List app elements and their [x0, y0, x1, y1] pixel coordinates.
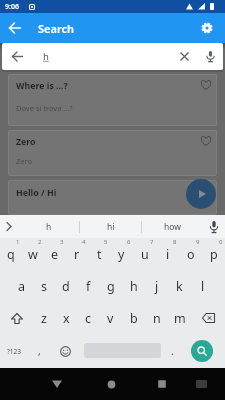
button[interactable]: i [156, 238, 179, 270]
staticText: , [38, 344, 41, 358]
button[interactable]: . [163, 334, 181, 368]
staticText: h [43, 50, 49, 63]
staticText: r [74, 246, 80, 263]
button[interactable]: s [33, 270, 55, 302]
button[interactable] [2, 43, 32, 70]
button[interactable]: a [11, 270, 33, 302]
button[interactable]: y [110, 238, 133, 270]
button[interactable] [190, 368, 212, 400]
button[interactable]: c [77, 302, 99, 334]
button[interactable]: Where is ...? [8, 74, 217, 126]
button[interactable] [186, 179, 216, 209]
staticText: 0 [219, 238, 223, 246]
button[interactable] [197, 43, 223, 70]
staticText: o [187, 246, 195, 263]
staticText: 2 [38, 238, 42, 246]
button[interactable]: n [145, 302, 168, 334]
button[interactable] [0, 302, 33, 334]
staticText: l [201, 278, 205, 295]
button[interactable]: f [77, 270, 99, 302]
staticText: e [51, 246, 59, 263]
staticText: 3 [60, 238, 64, 246]
staticText: h [46, 221, 52, 233]
staticText: z [41, 310, 47, 327]
button[interactable]: m [168, 302, 191, 334]
staticText: a [18, 278, 26, 295]
button[interactable] [53, 334, 77, 368]
staticText: h [130, 278, 138, 295]
staticText: 1 [16, 238, 20, 246]
staticText: Search [38, 21, 75, 36]
staticText: k [176, 278, 183, 295]
button[interactable]: h [18, 215, 79, 238]
staticText: c [85, 310, 92, 327]
button[interactable]: j [145, 270, 168, 302]
button[interactable] [149, 368, 175, 400]
button[interactable]: Hello / Hi [8, 180, 217, 215]
staticText: x [63, 310, 70, 327]
button[interactable] [98, 368, 124, 400]
button[interactable]: x [55, 302, 77, 334]
staticText: d [62, 278, 70, 295]
staticText: 6 [127, 238, 131, 246]
button[interactable] [191, 340, 213, 362]
staticText: Where is ...? [16, 80, 68, 92]
staticText: Zero [16, 136, 36, 148]
staticText: 7 [150, 238, 154, 246]
staticText: f [86, 278, 91, 295]
staticText: ?123 [7, 347, 21, 356]
staticText: y [118, 246, 125, 263]
button[interactable]: k [168, 270, 191, 302]
staticText: 9:06 [5, 2, 19, 12]
button[interactable]: how [142, 215, 203, 238]
button[interactable]: u [133, 238, 156, 270]
button[interactable]: h [122, 270, 145, 302]
staticText: hi [107, 221, 115, 233]
button[interactable]: hi [80, 215, 141, 238]
staticText: 9 [196, 238, 200, 246]
staticText: u [141, 246, 149, 263]
button[interactable] [191, 302, 225, 334]
staticText: s [41, 278, 47, 295]
button[interactable]: l [191, 270, 214, 302]
staticText: 8 [173, 238, 177, 246]
button[interactable]: Zero [8, 130, 217, 176]
staticText: b [130, 310, 138, 327]
button[interactable]: o [179, 238, 202, 270]
staticText: q [7, 246, 15, 263]
button[interactable] [0, 215, 18, 238]
button[interactable]: t [88, 238, 110, 270]
staticText: p [210, 246, 218, 263]
button[interactable]: q [0, 238, 22, 270]
button[interactable]: g [99, 270, 122, 302]
button[interactable] [44, 368, 70, 400]
staticText: how [164, 221, 181, 233]
button[interactable]: b [122, 302, 145, 334]
button[interactable]: d [55, 270, 77, 302]
button[interactable]: , [30, 334, 49, 368]
button[interactable]: ?123 [0, 334, 28, 368]
button[interactable] [199, 20, 215, 36]
button[interactable]: p [202, 238, 225, 270]
button[interactable]: r [66, 238, 88, 270]
staticText: v [107, 310, 114, 327]
button[interactable]: w [22, 238, 44, 270]
staticText: n [153, 310, 161, 327]
button[interactable]: v [99, 302, 122, 334]
button[interactable]: e [44, 238, 66, 270]
staticText: 5 [104, 238, 108, 246]
staticText: 4 [82, 238, 86, 246]
staticText: j [155, 278, 159, 295]
staticText: i [166, 246, 170, 263]
staticText: w [28, 246, 38, 263]
button[interactable] [173, 43, 195, 70]
staticText: Dove si trova ...? [16, 103, 73, 113]
button[interactable] [0, 13, 30, 43]
button[interactable]: z [33, 302, 55, 334]
staticText: m [174, 310, 186, 327]
staticText: Hello / Hi [16, 187, 57, 199]
button[interactable] [203, 215, 225, 238]
staticText: g [107, 278, 115, 295]
staticText: Zero [16, 156, 33, 166]
